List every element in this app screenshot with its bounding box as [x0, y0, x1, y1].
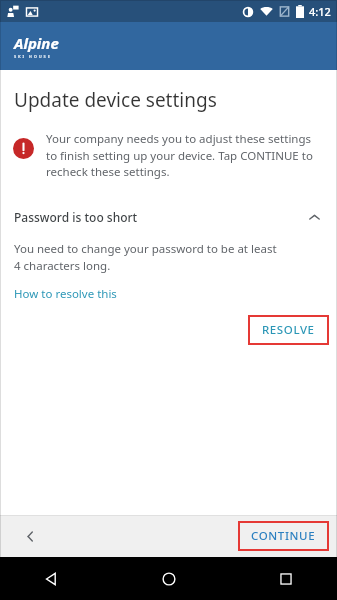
button[interactable]: CONTINUE [240, 523, 327, 549]
staticText: CONTINUE [251, 528, 316, 544]
staticText: How to resolve this [14, 286, 117, 302]
staticText: Update device settings [14, 87, 217, 113]
staticText: Password is too short [14, 209, 303, 225]
button[interactable]: Home [152, 562, 186, 596]
other: Collapse [303, 206, 325, 228]
button[interactable]: Recent apps [269, 562, 303, 596]
staticText: You need to change your password to be a… [14, 241, 277, 273]
button[interactable]: Password is too short [0, 202, 337, 232]
staticText: Alpine [14, 33, 59, 53]
staticText: 4:12 [309, 4, 331, 19]
staticText: RESOLVE [262, 322, 315, 338]
button[interactable]: Back [34, 562, 68, 596]
button[interactable]: RESOLVE [250, 317, 327, 343]
staticText: Your company needs you to adjust these s… [46, 131, 319, 179]
button[interactable]: Back [16, 522, 44, 550]
button[interactable]: How to resolve this [0, 285, 131, 303]
staticText: S K I H O U S E [14, 54, 51, 59]
